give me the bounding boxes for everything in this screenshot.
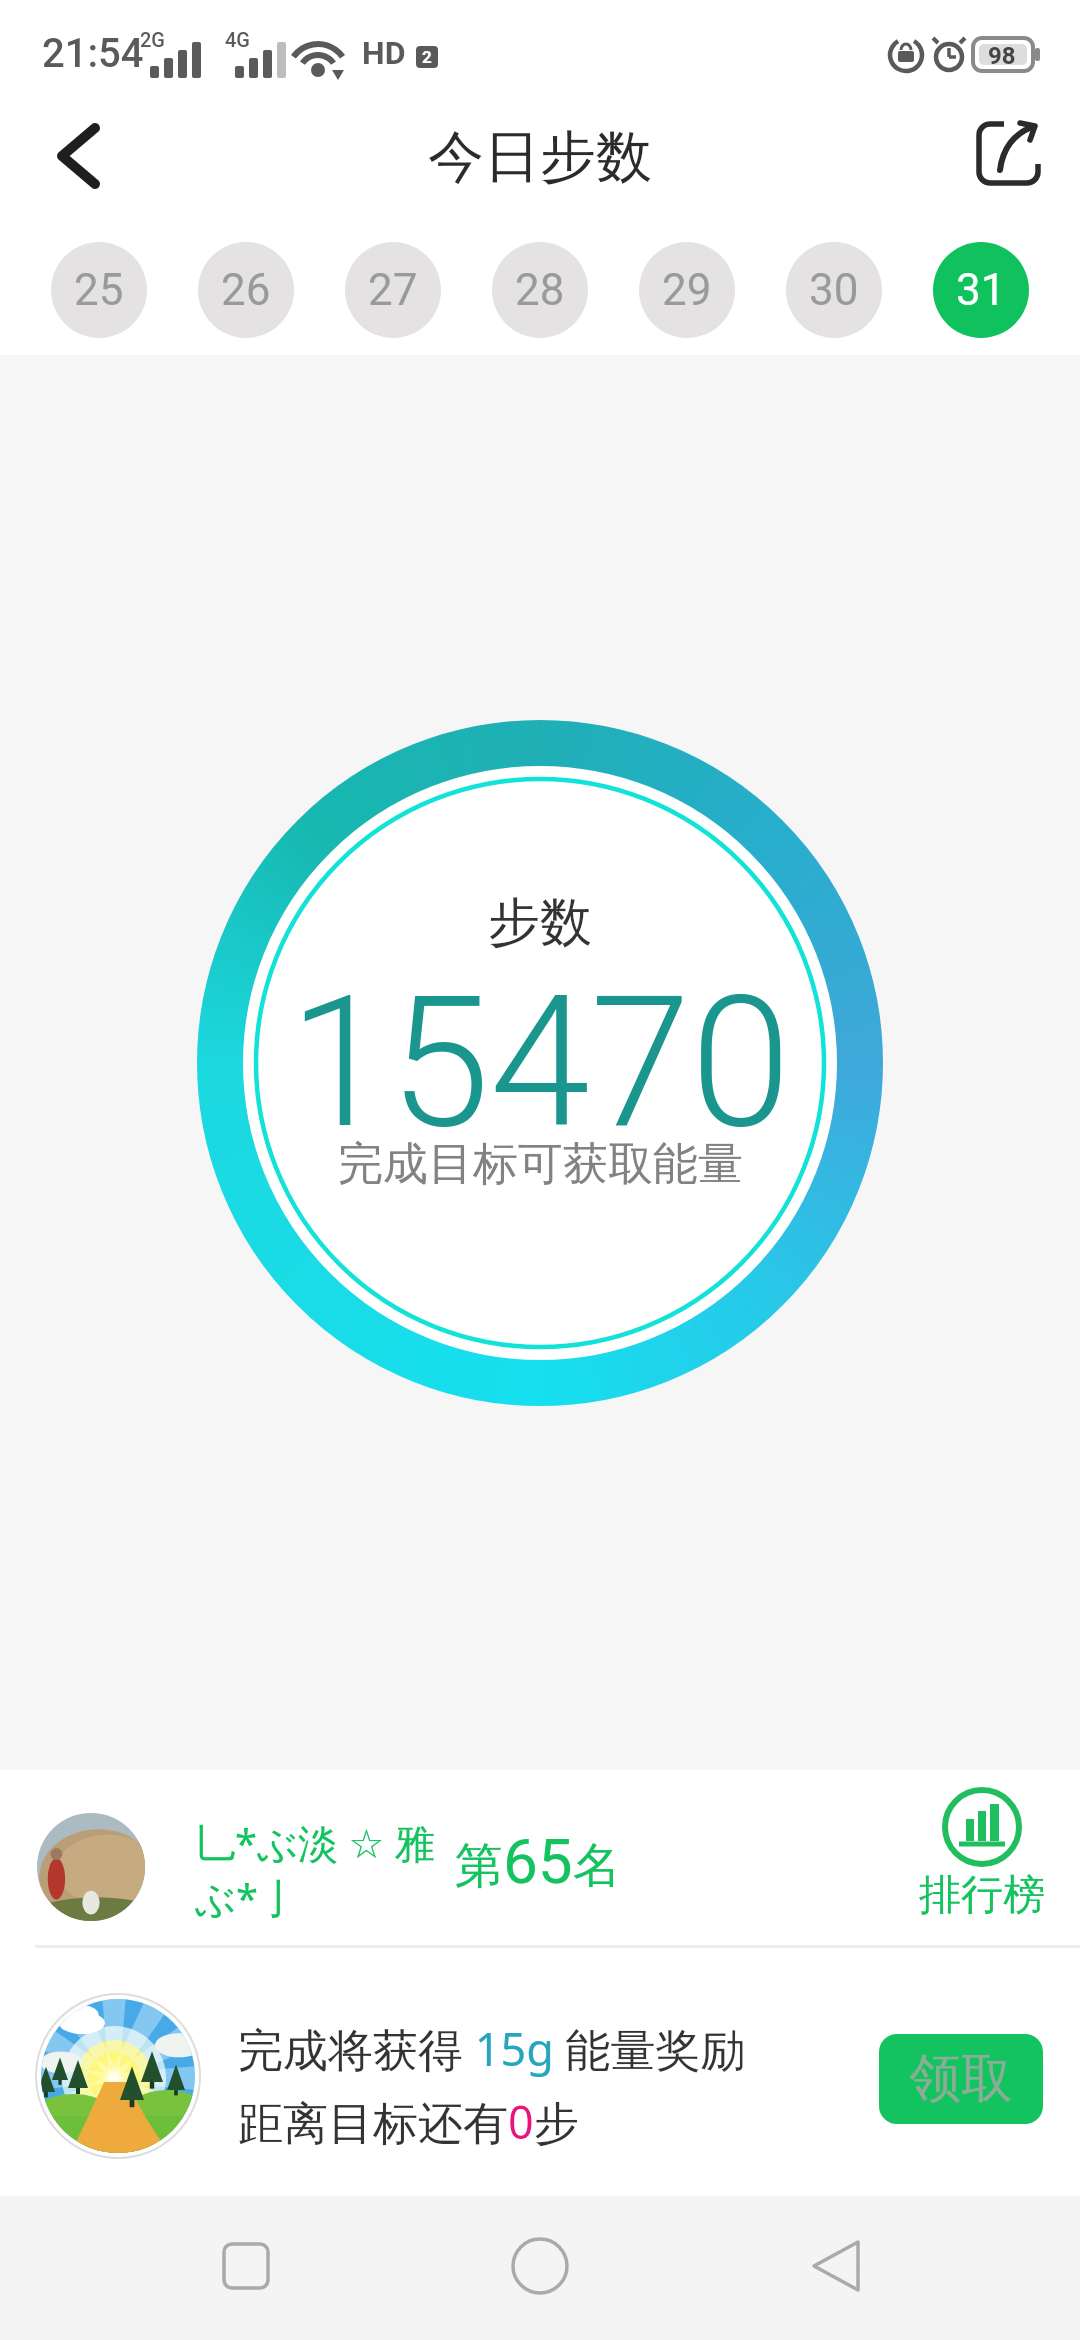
staticText: 2 — [422, 47, 432, 67]
staticText: 第 — [455, 1836, 503, 1896]
staticText: 65 — [503, 1825, 573, 1898]
staticText: 乚*ぶ淡 ☆ 雅 — [195, 1815, 435, 1870]
staticText: 2G — [140, 28, 165, 51]
staticText: 30 — [809, 264, 859, 316]
staticText: 名 — [573, 1836, 621, 1896]
staticText: ぶ*亅 — [195, 1870, 298, 1925]
button[interactable]: 26 — [198, 242, 294, 338]
staticText: 21:54 — [42, 30, 144, 77]
button[interactable] — [25, 100, 125, 215]
button[interactable]: 31 — [933, 242, 1029, 338]
staticText: 步数 — [488, 890, 592, 956]
staticText: 完成目标可获取能量 — [338, 1136, 743, 1193]
staticText: 31 — [956, 264, 1006, 316]
button[interactable]: 排行榜 — [919, 1787, 1045, 1920]
staticText: HD — [362, 34, 406, 72]
staticText: 98 — [988, 42, 1016, 70]
staticText: 完成将获得 15g 能量奖励 — [238, 2018, 746, 2079]
button[interactable]: 30 — [786, 242, 882, 338]
staticText: 15470 — [289, 957, 791, 1169]
staticText: 28 — [515, 264, 565, 316]
button[interactable]: 乚*ぶ淡 ☆ 雅 — [0, 1770, 1080, 1945]
staticText: 排行榜 — [919, 1869, 1045, 1922]
button[interactable] — [960, 105, 1060, 205]
button[interactable]: 29 — [639, 242, 735, 338]
staticText: 27 — [368, 264, 418, 316]
button[interactable]: 领取 — [879, 2034, 1043, 2124]
staticText: 26 — [221, 264, 271, 316]
staticText: 距离目标还有0步 — [238, 2091, 579, 2152]
staticText: 今日步数 — [428, 122, 652, 193]
staticText: 领取 — [909, 2046, 1013, 2112]
button[interactable]: 25 — [51, 242, 147, 338]
button[interactable]: 27 — [345, 242, 441, 338]
staticText: 25 — [74, 264, 124, 316]
staticText: 4G — [225, 28, 250, 51]
button[interactable]: 28 — [492, 242, 588, 338]
staticText: 29 — [662, 264, 712, 316]
